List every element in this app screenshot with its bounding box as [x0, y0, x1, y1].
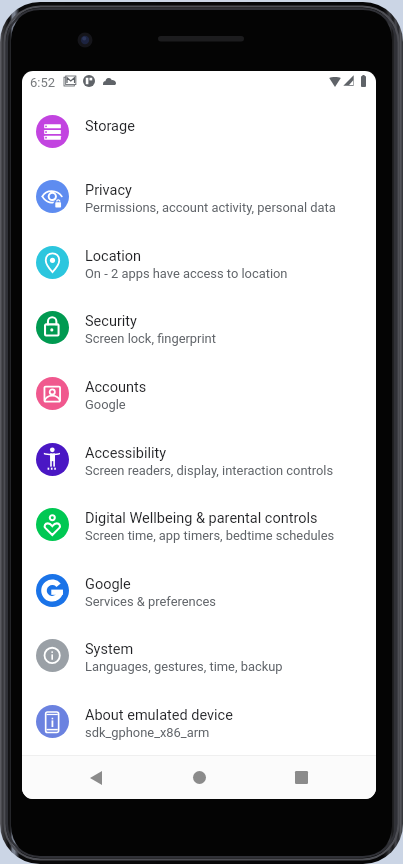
button[interactable]: Privacy [22, 164, 376, 230]
staticText: System [85, 641, 134, 658]
staticText: Location [85, 248, 142, 265]
button[interactable]: Accessibility [22, 427, 376, 493]
staticText: sdk_gphone_x86_arm [85, 725, 210, 740]
staticText: About emulated device [85, 707, 233, 724]
button[interactable]: Digital Wellbeing & parental controls [22, 492, 376, 558]
staticText: 6:52 [30, 75, 56, 90]
staticText: Accessibility [85, 445, 167, 462]
staticText: Permissions, account activity, personal … [85, 200, 336, 215]
staticText: Accounts [85, 379, 147, 396]
staticText: On - 2 apps have access to location [85, 266, 288, 281]
button[interactable]: Back [70, 756, 122, 799]
button[interactable]: System [22, 623, 376, 689]
staticText: Security [85, 313, 137, 330]
staticText: Screen readers, display, interaction con… [85, 463, 334, 478]
button[interactable]: About emulated device [22, 689, 376, 755]
staticText: Google [85, 576, 131, 593]
staticText: Screen time, app timers, bedtime schedul… [85, 528, 335, 543]
staticText: Privacy [85, 182, 132, 199]
button[interactable]: Storage [22, 99, 376, 165]
button[interactable]: Google [22, 558, 376, 624]
staticText: Languages, gestures, time, backup [85, 659, 283, 674]
staticText: Storage [85, 118, 135, 135]
button[interactable]: Recent apps [275, 756, 327, 799]
staticText: Services & preferences [85, 594, 216, 609]
staticText: Digital Wellbeing & parental controls [85, 510, 318, 527]
staticText: Screen lock, fingerprint [85, 331, 216, 346]
button[interactable]: Location [22, 230, 376, 296]
button[interactable]: Security [22, 295, 376, 361]
button[interactable]: Home [173, 756, 225, 799]
staticText: Google [85, 397, 126, 412]
button[interactable]: Accounts [22, 361, 376, 427]
